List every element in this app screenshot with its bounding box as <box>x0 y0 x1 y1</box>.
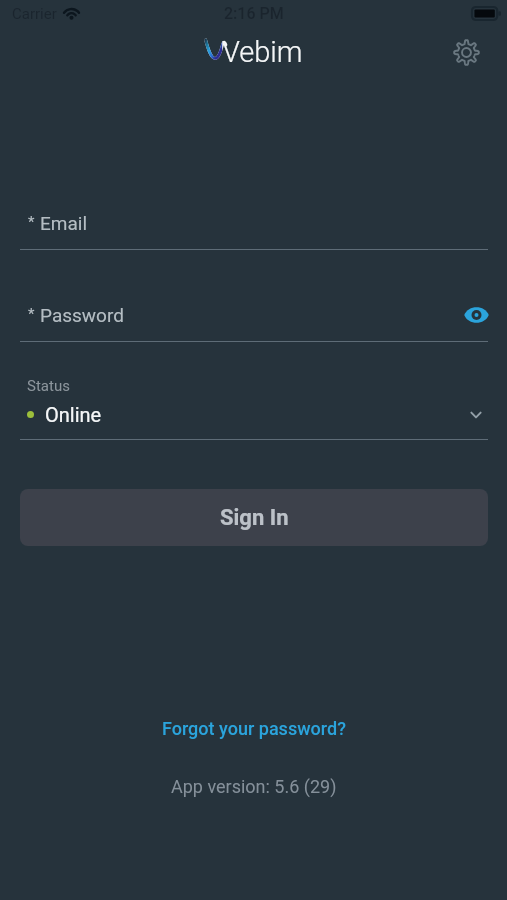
button[interactable]: Online <box>20 398 488 431</box>
staticText: * <box>28 305 35 323</box>
button[interactable]: Show password <box>458 297 494 333</box>
staticText: Online <box>45 403 102 426</box>
staticText: Status <box>27 377 70 395</box>
button[interactable]: Sign In <box>20 489 488 546</box>
staticText: Email <box>40 212 88 234</box>
button[interactable]: Settings <box>446 32 486 72</box>
staticText: App version: 5.6 (29) <box>171 776 337 797</box>
staticText: Carrier <box>12 5 57 23</box>
staticText: * <box>28 213 35 231</box>
staticText: Sign In <box>220 505 289 531</box>
button[interactable]: * <box>20 292 488 338</box>
staticText: Forgot your password? <box>162 718 346 739</box>
staticText: Vebim <box>222 35 303 69</box>
staticText: 2:16 PM <box>224 4 284 23</box>
button[interactable]: Forgot your password? <box>0 712 507 745</box>
button[interactable]: * <box>20 200 488 246</box>
staticText: Password <box>40 304 124 326</box>
